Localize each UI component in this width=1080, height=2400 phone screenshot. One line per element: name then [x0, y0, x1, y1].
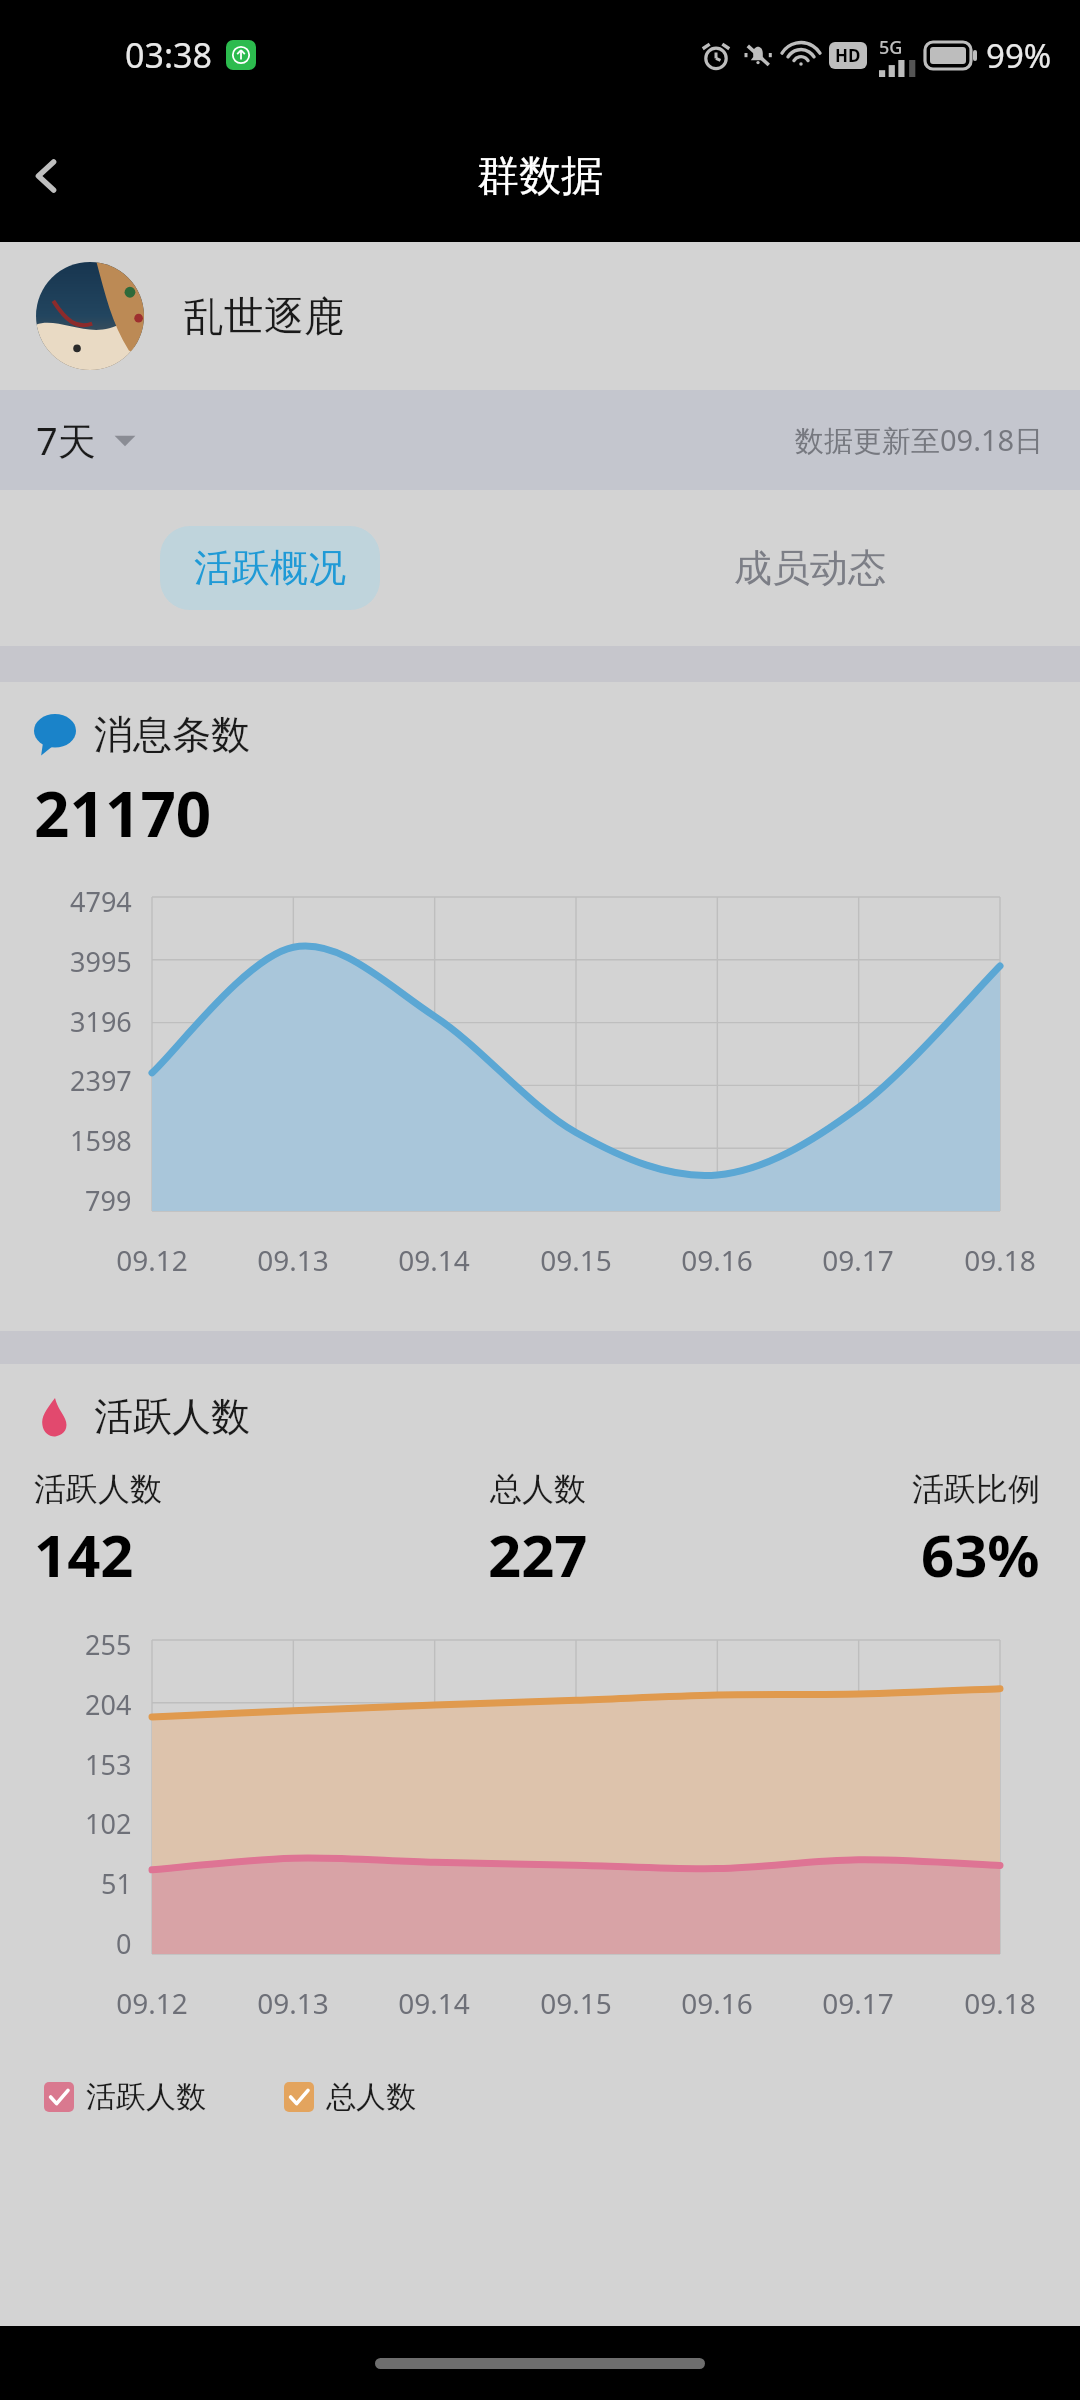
staticText: 总人数	[490, 1469, 586, 1509]
staticText: 活跃人数	[34, 1469, 162, 1509]
staticText: 09.16	[681, 1241, 753, 1279]
button[interactable]: 7天	[0, 390, 162, 490]
staticText: 0	[116, 1925, 132, 1962]
staticText: 活跃人数	[86, 2078, 206, 2116]
button[interactable]: 总人数	[284, 2078, 416, 2116]
staticText: 09.18	[964, 1984, 1036, 2022]
staticText: 799	[85, 1182, 132, 1219]
staticText: 活跃概况	[194, 544, 346, 592]
staticText: 09.14	[398, 1241, 470, 1279]
staticText: 活跃人数	[94, 1392, 250, 1441]
staticText: 群数据	[477, 150, 603, 203]
staticText: 09.14	[398, 1984, 470, 2022]
staticText: 数据更新至09.18日	[795, 420, 1044, 460]
staticText: 09.15	[540, 1241, 612, 1279]
staticText: 4794	[70, 883, 132, 920]
staticText: 09.15	[540, 1984, 612, 2022]
staticText: 21170	[34, 771, 212, 855]
staticText: 102	[85, 1805, 132, 1842]
staticText: 153	[85, 1746, 132, 1783]
staticText: 09.16	[681, 1984, 753, 2022]
staticText: 09.17	[822, 1241, 894, 1279]
staticText: 09.17	[822, 1984, 894, 2022]
staticText: 99%	[986, 33, 1052, 78]
staticText: 活跃比例	[912, 1469, 1040, 1509]
staticText: 255	[85, 1626, 132, 1663]
staticText: 乱世逐鹿	[184, 291, 344, 341]
staticText: 7天	[36, 414, 96, 466]
staticText: 消息条数	[94, 710, 250, 759]
button[interactable]: 活跃人数	[44, 2078, 206, 2116]
staticText: 09.18	[964, 1241, 1036, 1279]
staticText: 09.13	[257, 1241, 329, 1279]
staticText: 3995	[70, 943, 132, 980]
staticText: 总人数	[326, 2078, 416, 2116]
staticText: 09.13	[257, 1984, 329, 2022]
staticText: 1598	[70, 1122, 132, 1159]
button[interactable]: Back	[0, 130, 92, 222]
staticText: 成员动态	[734, 544, 886, 592]
staticText: 3196	[70, 1003, 132, 1040]
staticText: 63%	[921, 1515, 1040, 1594]
staticText: 227	[488, 1515, 588, 1594]
staticText: 03:38	[125, 32, 212, 78]
button[interactable]: 活跃概况	[160, 526, 380, 610]
staticText: 142	[34, 1515, 134, 1594]
button[interactable]: 乱世逐鹿	[0, 242, 1080, 390]
staticText: 09.12	[116, 1984, 188, 2022]
staticText: HD	[835, 44, 861, 67]
staticText: 5G	[879, 35, 903, 60]
button[interactable]: 成员动态	[700, 526, 920, 610]
staticText: 51	[101, 1865, 132, 1902]
staticText: 2397	[70, 1062, 132, 1099]
staticText: 09.12	[116, 1241, 188, 1279]
staticText: 204	[85, 1686, 132, 1723]
